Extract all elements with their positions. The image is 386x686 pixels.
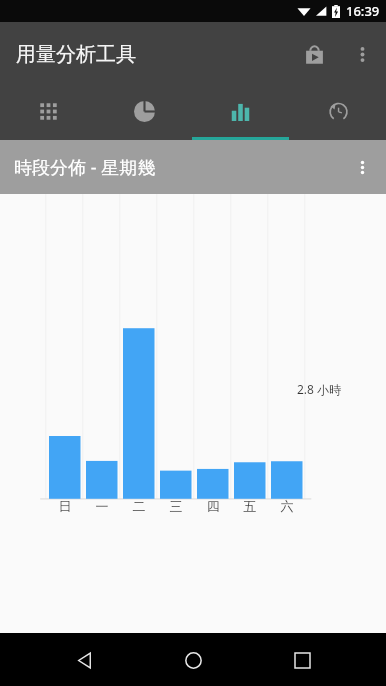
button[interactable]: Recents <box>278 636 326 684</box>
button[interactable]: More options <box>338 30 386 78</box>
button[interactable]: History <box>289 86 386 140</box>
staticText: 日 <box>57 498 73 514</box>
staticText: 時段分佈 - 星期幾 <box>14 155 156 180</box>
staticText: 五 <box>242 498 258 514</box>
staticText: 三 <box>168 498 184 514</box>
button[interactable]: Chart options <box>338 143 386 191</box>
staticText: 16:39 <box>346 2 380 20</box>
button[interactable]: Apps <box>0 86 96 140</box>
staticText: 2.8 小時 <box>297 381 342 397</box>
button[interactable]: Bar chart <box>192 86 289 140</box>
button[interactable]: Home <box>169 636 217 684</box>
staticText: 一 <box>94 498 110 514</box>
staticText: 六 <box>279 498 295 514</box>
button[interactable]: Pie chart <box>96 86 192 140</box>
button[interactable]: Play Store <box>290 30 338 78</box>
staticText: 二 <box>131 498 147 514</box>
staticText: 用量分析工具 <box>16 42 136 67</box>
staticText: 四 <box>205 498 221 514</box>
button[interactable]: Back <box>61 636 109 684</box>
